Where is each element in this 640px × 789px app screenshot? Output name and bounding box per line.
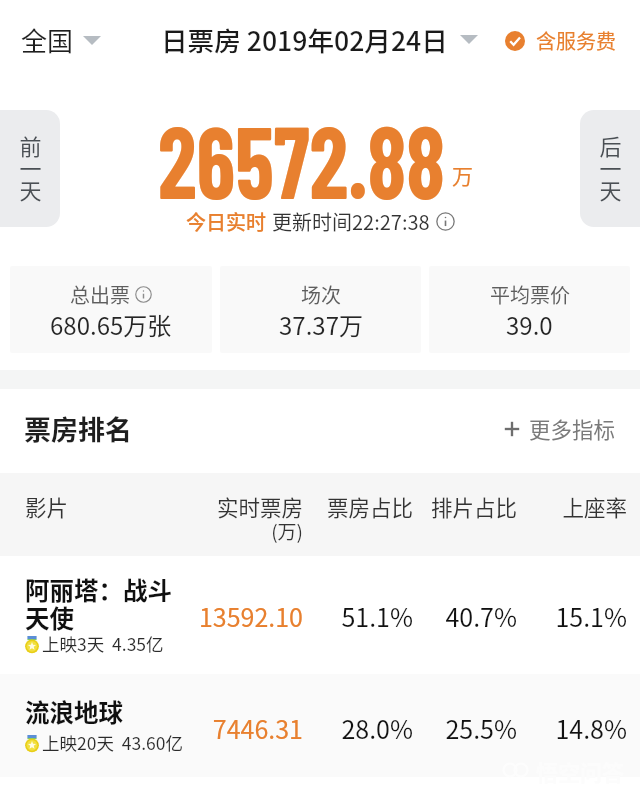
staticText: 含服务费	[536, 26, 616, 55]
staticText: 7446.31	[133, 710, 303, 746]
staticText: 更新时间22:27:38	[272, 207, 430, 236]
staticText: 更多指标	[529, 413, 616, 444]
button[interactable]: 总出票说明	[135, 286, 152, 303]
staticText: 28.0%	[243, 710, 413, 746]
staticText: 26572.88	[158, 98, 445, 219]
staticText: 上座率	[457, 491, 627, 522]
staticText: 后 一 天	[599, 129, 622, 205]
button[interactable]: 后 一 天	[580, 110, 640, 227]
button[interactable]: 流浪地球	[0, 674, 640, 777]
staticText: 680.65万张	[50, 307, 172, 342]
button[interactable]: 更多指标	[503, 413, 616, 444]
staticText: 39.0	[506, 307, 553, 342]
button[interactable]: 阿丽塔：战斗 天使	[0, 556, 640, 674]
staticText: 票房占比	[243, 491, 413, 522]
button[interactable]: 含服务费	[505, 26, 616, 55]
staticText: 排片占比	[347, 491, 517, 522]
staticText: 平均票价	[490, 280, 570, 309]
staticText: 14.8%	[457, 710, 627, 746]
staticText: 总出票	[70, 280, 130, 309]
staticText: 日票房 2019年02月24日	[161, 20, 448, 59]
staticText: 流浪地球	[25, 694, 123, 729]
button[interactable]: 票房排名	[24, 409, 132, 448]
staticText: 13592.10	[133, 598, 303, 634]
staticText: 全国	[21, 21, 74, 59]
staticText: 影片	[25, 491, 69, 522]
button[interactable]: 平均票价	[429, 266, 630, 353]
staticText: 40.7%	[347, 598, 517, 634]
button[interactable]: 全国	[21, 21, 101, 59]
button[interactable]: 场次	[220, 266, 421, 353]
button[interactable]: 前 一 天	[0, 110, 60, 227]
staticText: 票房排名	[24, 409, 132, 448]
staticText: 阿丽塔：战斗 天使	[25, 572, 172, 635]
staticText: 上映20天 43.60亿	[42, 730, 183, 755]
staticText: 场次	[301, 280, 341, 309]
button[interactable]: 实时票房说明	[436, 212, 455, 231]
staticText: 今日实时	[186, 207, 266, 236]
staticText: 25.5%	[347, 710, 517, 746]
staticText: 上映3天 4.35亿	[42, 631, 164, 656]
staticText: 前 一 天	[19, 129, 42, 205]
button[interactable]: 总出票	[10, 266, 212, 353]
button[interactable]: 日票房 2019年02月24日	[161, 20, 478, 59]
staticText: 37.37万	[279, 307, 363, 342]
staticText: 15.1%	[457, 598, 627, 634]
staticText: 51.1%	[243, 598, 413, 634]
staticText: (万)	[133, 517, 303, 545]
staticText: 实时票房	[133, 491, 303, 522]
staticText: 万	[452, 160, 473, 190]
